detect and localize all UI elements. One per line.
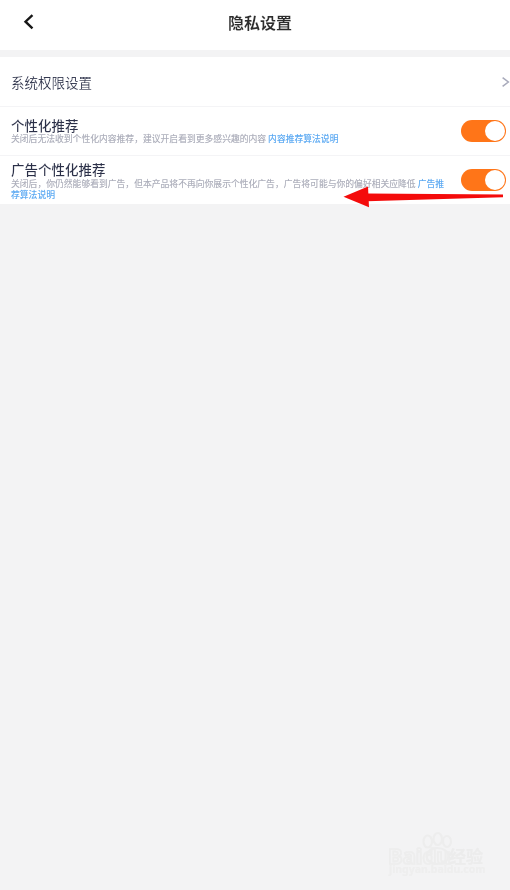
button[interactable]: 系统权限设置	[0, 57, 510, 106]
staticText: 广告个性化推荐	[11, 159, 106, 179]
staticText: 个性化推荐	[11, 115, 79, 135]
button[interactable]: Toggle, on	[461, 120, 506, 142]
staticText: 隐私设置	[228, 10, 293, 33]
button[interactable]: Back	[0, 0, 50, 50]
button[interactable]: 广告个性化推荐	[0, 156, 510, 204]
staticText: 关闭后无法收到个性化内容推荐，建议开启看到更多感兴趣的内容 内容推荐算法说明	[11, 132, 451, 145]
button[interactable]: Toggle, on	[461, 169, 506, 191]
staticText: 经验	[449, 843, 483, 868]
staticText: 关闭后，你仍然能够看到广告，但本产品将不再向你展示个性化广告，广告将可能与你的偏…	[11, 177, 451, 200]
button[interactable]: 个性化推荐	[0, 107, 510, 155]
staticText: 系统权限设置	[11, 72, 92, 92]
